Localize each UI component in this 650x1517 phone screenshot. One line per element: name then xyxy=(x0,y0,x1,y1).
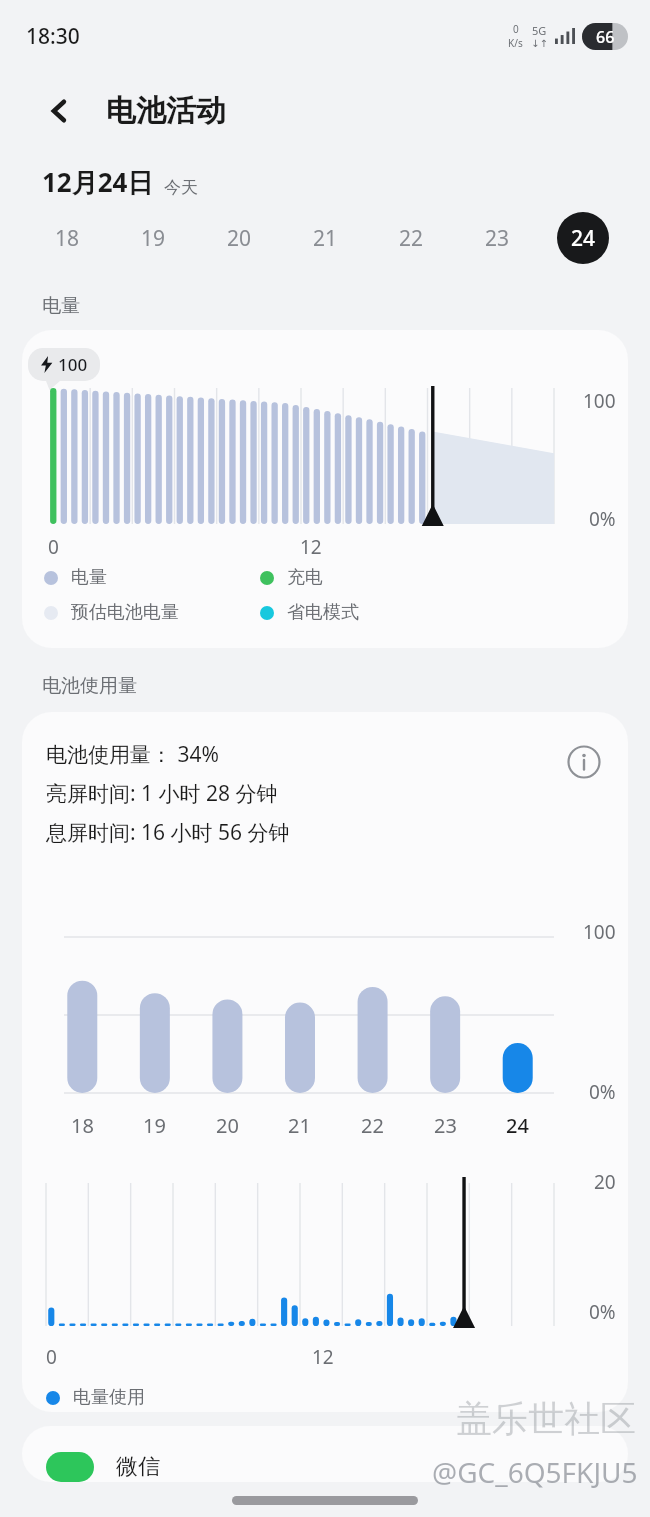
staticText: 22 xyxy=(399,224,424,253)
staticText: 0 xyxy=(46,1344,57,1370)
staticText: 24 xyxy=(571,224,596,253)
staticText: 电池活动 xyxy=(106,92,226,130)
staticText: ↓↑ xyxy=(531,38,548,50)
staticText: 100 xyxy=(583,388,616,414)
staticText: 24 xyxy=(506,1112,529,1139)
staticText: 电池使用量： 34% xyxy=(46,740,219,769)
button[interactable]: 21 xyxy=(282,200,368,276)
button[interactable]: 18 xyxy=(24,200,110,276)
staticText: 亮屏时间: 1 小时 28 分钟 xyxy=(46,779,278,808)
button[interactable]: 微信 xyxy=(22,1426,628,1482)
staticText: 23 xyxy=(434,1112,457,1139)
button[interactable]: 19 xyxy=(110,200,196,276)
staticText: 0% xyxy=(589,506,616,532)
staticText: 5G xyxy=(532,23,547,38)
button[interactable]: 22 xyxy=(368,200,454,276)
staticText: @GC_6Q5FKJU5 xyxy=(432,1453,638,1491)
staticText: 电量 xyxy=(42,294,80,318)
button[interactable]: 23 xyxy=(454,200,540,276)
staticText: 18 xyxy=(71,1112,94,1139)
staticText: 充电 xyxy=(287,566,323,589)
staticText: 19 xyxy=(143,1112,166,1139)
staticText: 20 xyxy=(227,224,252,253)
staticText: 12月24日 xyxy=(42,164,154,200)
button[interactable]: 20 xyxy=(196,200,282,276)
button[interactable]: 24 xyxy=(540,200,626,276)
staticText: 66 xyxy=(596,26,615,48)
staticText: 100 xyxy=(58,353,88,376)
staticText: 0 xyxy=(513,22,519,36)
staticText: 电量使用 xyxy=(73,1386,145,1409)
staticText: 22 xyxy=(361,1112,384,1139)
staticText: K/s xyxy=(508,36,523,50)
staticText: 21 xyxy=(288,1112,311,1139)
staticText: 省电模式 xyxy=(287,601,359,624)
staticText: 19 xyxy=(141,224,166,253)
staticText: 0 xyxy=(48,534,59,560)
button[interactable]: Info xyxy=(562,740,606,784)
staticText: 微信 xyxy=(116,1453,160,1481)
staticText: 预估电池电量 xyxy=(71,601,179,624)
staticText: 0% xyxy=(589,1299,616,1325)
staticText: 18:30 xyxy=(26,22,80,51)
staticText: 18 xyxy=(55,224,80,253)
button[interactable]: 100 xyxy=(22,330,628,648)
staticText: 电池使用量 xyxy=(42,674,137,698)
staticText: 电量 xyxy=(71,566,107,589)
staticText: 20 xyxy=(216,1112,239,1139)
staticText: 息屏时间: 16 小时 56 分钟 xyxy=(46,818,290,847)
staticText: 20 xyxy=(594,1169,616,1195)
button[interactable]: Back xyxy=(34,85,86,137)
staticText: 0% xyxy=(589,1079,616,1105)
staticText: 盖乐世社区 xyxy=(456,1396,636,1441)
staticText: 12 xyxy=(300,534,322,560)
staticText: 今天 xyxy=(164,177,198,198)
staticText: 100 xyxy=(583,919,616,945)
staticText: 21 xyxy=(313,224,338,253)
staticText: 12 xyxy=(312,1344,334,1370)
staticText: 23 xyxy=(485,224,510,253)
button[interactable]: 电池使用量： 34% xyxy=(22,712,628,1412)
